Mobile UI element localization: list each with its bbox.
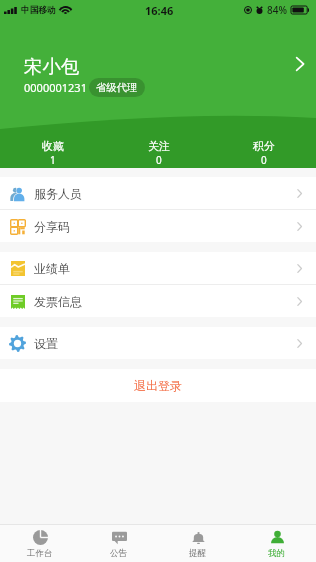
button[interactable]: 发票信息	[0, 285, 316, 317]
staticText: 发票信息	[34, 294, 82, 309]
staticText: 收藏	[42, 139, 64, 153]
staticText: 0	[261, 153, 267, 167]
button[interactable]: 提醒	[158, 525, 237, 562]
button[interactable]: 业绩单	[0, 252, 316, 284]
staticText: 关注	[148, 139, 170, 153]
button[interactable]: 退出登录	[0, 369, 316, 402]
button[interactable]: 分享码	[0, 210, 316, 242]
staticText: 宋小包	[24, 55, 80, 78]
staticText: 业绩单	[34, 261, 70, 276]
staticText: 16:46	[145, 3, 174, 18]
button[interactable]: 关注	[106, 137, 211, 167]
staticText: 退出登录	[134, 378, 182, 393]
button[interactable]: 工作台	[0, 525, 79, 562]
button[interactable]: 收藏	[0, 137, 106, 167]
staticText: 设置	[34, 336, 58, 351]
staticText: 公告	[110, 548, 127, 559]
staticText: 84%	[267, 3, 287, 17]
staticText: 积分	[253, 139, 275, 153]
staticText: 分享码	[34, 219, 70, 234]
staticText: 我的	[268, 548, 285, 559]
staticText: 0000001231	[24, 80, 87, 95]
button[interactable]: 设置	[0, 327, 316, 359]
staticText: 提醒	[189, 548, 206, 559]
button[interactable]: 公告	[79, 525, 158, 562]
button[interactable]: 我的	[237, 525, 316, 562]
staticText: 1	[50, 153, 56, 167]
button[interactable]: 服务人员	[0, 177, 316, 209]
staticText: 0	[156, 153, 162, 167]
button[interactable]: 积分	[211, 137, 316, 167]
staticText: 工作台	[27, 548, 53, 559]
staticText: 中国移动	[21, 5, 56, 16]
button[interactable]: Profile details	[284, 48, 316, 80]
staticText: 服务人员	[34, 186, 82, 201]
staticText: 省级代理	[96, 81, 138, 94]
